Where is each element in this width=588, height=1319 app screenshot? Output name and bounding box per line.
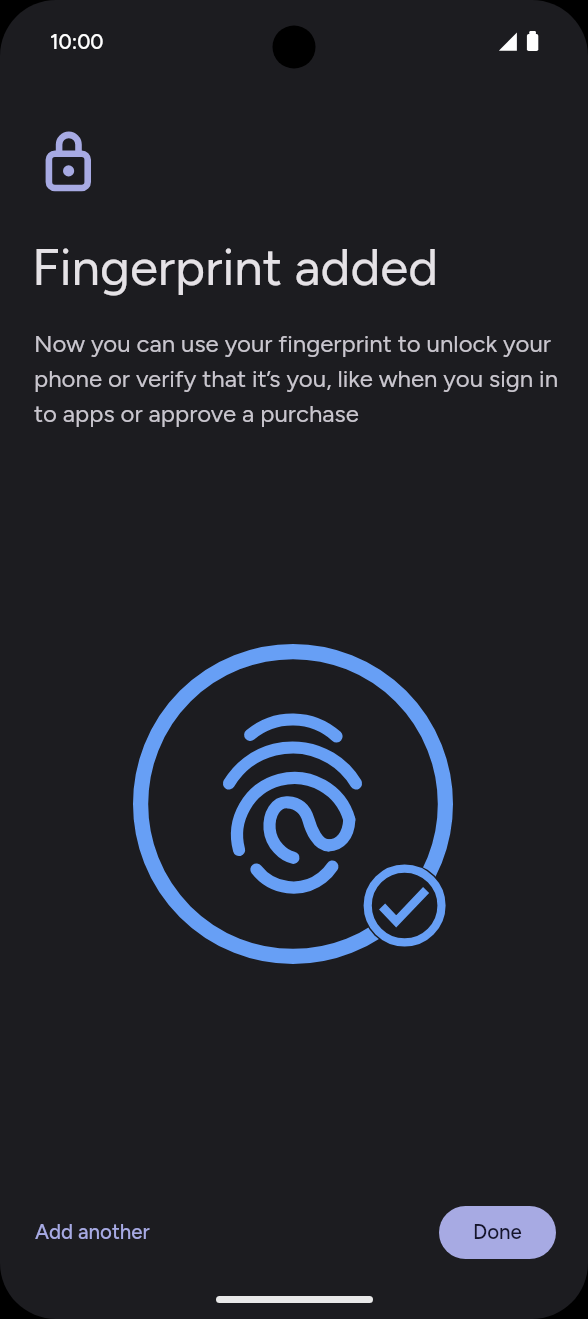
button[interactable]: Done bbox=[439, 1206, 556, 1259]
staticText: Now you can use your fingerprint to unlo… bbox=[34, 329, 568, 428]
staticText: Fingerprint added bbox=[32, 237, 439, 298]
staticText: Done bbox=[473, 1220, 522, 1245]
staticText: Add another bbox=[35, 1220, 150, 1245]
staticText: 10:00 bbox=[50, 30, 104, 55]
button[interactable]: Add another bbox=[21, 1210, 164, 1255]
